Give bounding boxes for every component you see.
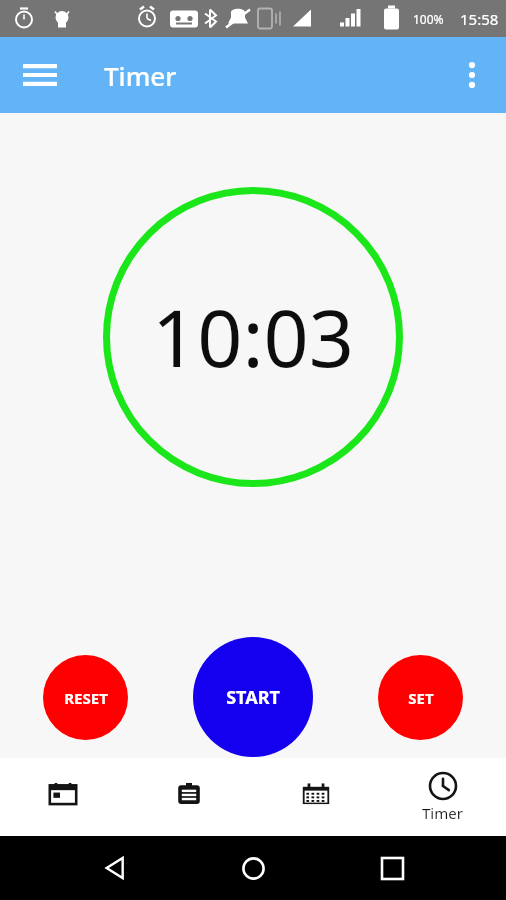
staticText: START bbox=[226, 685, 280, 710]
button[interactable]: Timer bbox=[379, 758, 506, 836]
staticText: Timer bbox=[422, 803, 463, 823]
staticText: Timer bbox=[104, 58, 177, 93]
button[interactable]: Back bbox=[91, 844, 139, 892]
button[interactable]: SET bbox=[378, 655, 463, 740]
button[interactable]: Home bbox=[229, 844, 277, 892]
button[interactable]: RESET bbox=[43, 655, 128, 740]
staticText: 100% bbox=[413, 11, 444, 27]
button[interactable]: Recent apps bbox=[368, 844, 416, 892]
button[interactable]: START bbox=[193, 637, 313, 757]
staticText: 10:03 bbox=[152, 283, 354, 391]
staticText: 15:58 bbox=[460, 9, 499, 29]
button[interactable]: Tasks bbox=[126, 758, 252, 836]
button[interactable]: More options bbox=[444, 47, 500, 103]
button[interactable]: Calendar bbox=[252, 758, 379, 836]
button[interactable]: Open navigation menu bbox=[8, 43, 72, 107]
staticText: SET bbox=[408, 688, 434, 708]
staticText: RESET bbox=[64, 688, 108, 708]
button[interactable]: Today bbox=[0, 758, 126, 836]
